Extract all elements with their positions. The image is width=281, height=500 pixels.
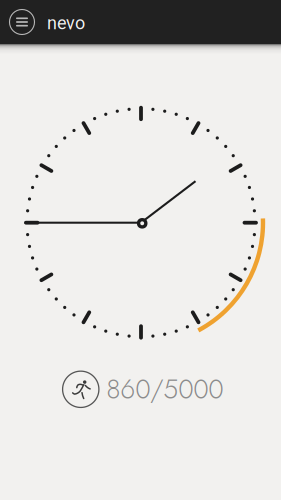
button[interactable]: 860/5000 <box>62 368 223 410</box>
staticText: nevo <box>47 12 85 34</box>
button[interactable]: Open menu <box>0 0 44 44</box>
staticText: 860/5000 <box>106 370 223 408</box>
